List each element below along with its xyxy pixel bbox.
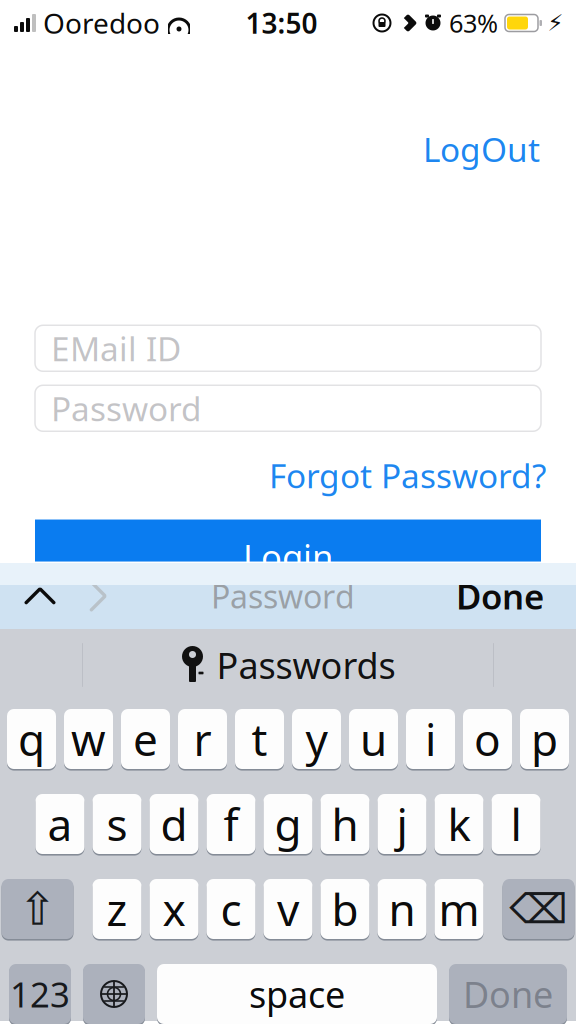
staticText: EMail ID [51,326,181,370]
button[interactable]: Shift [1,878,73,940]
staticText: s [106,795,127,853]
staticText: m [438,880,479,938]
button[interactable]: x [149,878,198,940]
button[interactable]: q [7,708,56,770]
button[interactable]: j [377,793,426,855]
staticText: Ooredoo [43,4,160,42]
staticText: d [160,795,187,853]
staticText: q [18,710,45,768]
button[interactable]: f [206,793,255,855]
staticText: f [223,795,238,853]
staticText: Login [243,533,333,579]
button[interactable]: m [434,878,483,940]
button[interactable]: Delete [502,878,574,940]
staticText: x [162,880,185,938]
button[interactable]: u [349,708,398,770]
staticText: LogOut [423,127,540,171]
staticText: 123 [10,971,70,1017]
staticText: Password [51,386,202,430]
button[interactable]: z [92,878,141,940]
button[interactable]: y [292,708,341,770]
button[interactable]: p [520,708,569,770]
button[interactable]: space [157,963,437,1024]
button[interactable]: Passwords [164,633,411,697]
staticText: e [133,710,158,768]
staticText: p [531,710,558,768]
button[interactable]: h [320,793,369,855]
staticText: 13:50 [245,4,317,42]
button[interactable]: Login [35,519,541,561]
button[interactable]: Done [449,963,567,1024]
button[interactable]: b [320,878,369,940]
staticText: space [249,970,345,1018]
button[interactable]: Done [446,567,554,625]
button[interactable]: w [64,708,113,770]
staticText: l [510,795,521,853]
staticText: b [331,880,358,938]
staticText: Password [211,575,355,617]
staticText: t [251,710,267,768]
button[interactable]: Next field [76,574,120,618]
staticText: a [47,795,72,853]
button[interactable]: c [206,878,255,940]
button[interactable]: g [263,793,312,855]
button[interactable]: Next keyboard [83,963,145,1024]
staticText: ⚡︎ [547,10,563,36]
staticText: g [274,795,301,853]
staticText: i [425,710,436,768]
staticText: ⇧ [18,883,56,935]
staticText: n [388,880,415,938]
button[interactable]: LogOut [417,123,546,175]
staticText: u [360,710,387,768]
button[interactable]: e [121,708,170,770]
staticText: v [277,880,299,938]
staticText: Passwords [216,641,395,689]
button[interactable]: d [149,793,198,855]
staticText: c [220,880,241,938]
button[interactable]: Forgot Password? [265,449,550,502]
button[interactable]: a [35,793,84,855]
staticText: 63% [449,6,498,40]
button[interactable]: l [491,793,540,855]
staticText: r [193,710,211,768]
button[interactable]: o [463,708,512,770]
staticText: z [106,880,127,938]
button[interactable]: s [92,793,141,855]
staticText: j [396,795,407,853]
button[interactable]: v [263,878,312,940]
button[interactable]: t [235,708,284,770]
staticText: Forgot Password? [269,453,546,498]
staticText: w [71,710,106,768]
button[interactable]: Previous field [18,574,62,618]
button[interactable]: i [406,708,455,770]
staticText: ⌫ [509,885,567,932]
button[interactable]: r [178,708,227,770]
staticText: Done [456,573,544,619]
staticText: o [474,710,501,768]
staticText: Done [463,970,553,1018]
staticText: k [447,795,470,853]
button[interactable]: Numbers and symbols [9,963,71,1024]
button[interactable]: k [434,793,483,855]
button[interactable]: n [377,878,426,940]
staticText: y [305,710,327,768]
staticText: h [331,795,358,853]
